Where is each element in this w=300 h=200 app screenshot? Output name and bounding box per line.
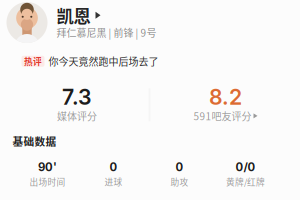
button[interactable]: 凯恩 [0, 0, 300, 43]
staticText: 0/0 [235, 162, 255, 173]
staticText: 90' [38, 162, 57, 173]
staticText: 拜仁慕尼黑 | 前锋 | 9号 [56, 25, 156, 39]
staticText: 0 [109, 162, 117, 173]
staticText: 591吧友评分 [193, 109, 251, 123]
button[interactable]: 591吧友评分 [193, 109, 257, 123]
staticText: 你今天竟然跑中后场去了 [48, 54, 158, 68]
staticText: 黄牌/红牌 [226, 175, 265, 188]
staticText: 媒体评分 [57, 109, 97, 123]
staticText: 7.3 [62, 86, 92, 108]
staticText: 热评 [24, 57, 42, 66]
button[interactable]: 热评 [0, 43, 300, 68]
staticText: 出场时间 [29, 175, 65, 188]
staticText: 进球 [104, 175, 122, 188]
staticText: 助攻 [170, 175, 188, 188]
staticText: 8.2 [209, 86, 242, 108]
staticText: 0 [175, 162, 183, 173]
staticText: 基础数据 [12, 133, 56, 148]
staticText: 凯恩 [56, 5, 90, 25]
